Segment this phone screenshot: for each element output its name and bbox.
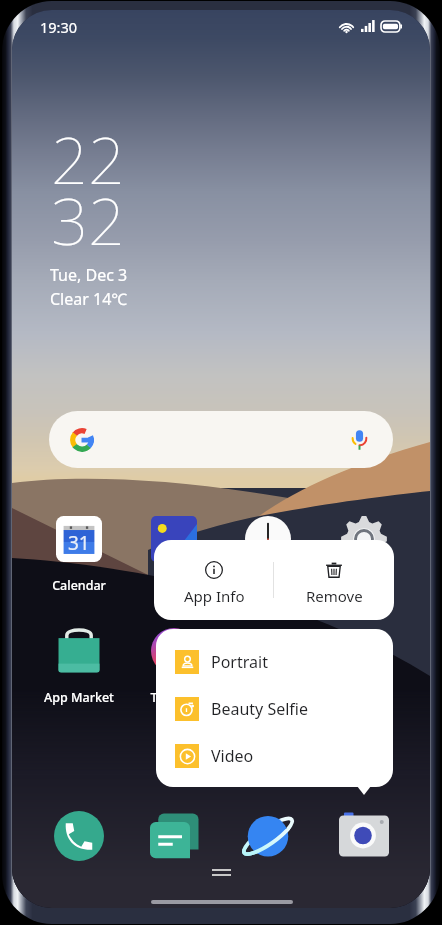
staticText: Beauty Selfie <box>211 698 308 720</box>
staticText: Themes <box>150 689 198 706</box>
staticText: Clock <box>252 577 285 594</box>
button[interactable]: Themes <box>134 628 214 706</box>
staticText: Video <box>211 745 254 767</box>
staticText: App Info <box>184 586 245 606</box>
button[interactable]: Phone <box>54 811 104 861</box>
button[interactable]: Camera <box>339 811 389 861</box>
staticText: Portrait <box>211 651 268 673</box>
button[interactable]: Settings <box>324 516 404 594</box>
button[interactable]: Clock <box>228 516 308 594</box>
button[interactable]: Calendar <box>39 516 119 594</box>
staticText: Photos <box>153 577 195 594</box>
button[interactable]: App Info <box>154 540 274 620</box>
staticText: 19:30 <box>40 17 78 37</box>
button[interactable]: App Market <box>39 628 119 706</box>
staticText: Remove <box>306 586 363 606</box>
staticText: 32 <box>51 176 126 265</box>
button[interactable]: Messages <box>149 811 199 861</box>
button[interactable]: Google search <box>49 411 393 468</box>
button[interactable]: Browser <box>243 811 293 861</box>
button[interactable]: Remove <box>274 540 394 620</box>
button[interactable]: Video <box>175 733 385 779</box>
staticText: 31 <box>68 530 90 554</box>
staticText: Tue, Dec 3 <box>50 264 128 286</box>
button[interactable]: Photos <box>134 516 214 594</box>
button[interactable]: Beauty Selfie <box>175 686 385 732</box>
staticText: Calendar <box>52 577 106 594</box>
button[interactable]: Portrait <box>175 639 385 685</box>
staticText: Clear 14℃ <box>50 288 128 310</box>
staticText: 22 <box>51 115 126 204</box>
staticText: App Market <box>44 689 114 706</box>
